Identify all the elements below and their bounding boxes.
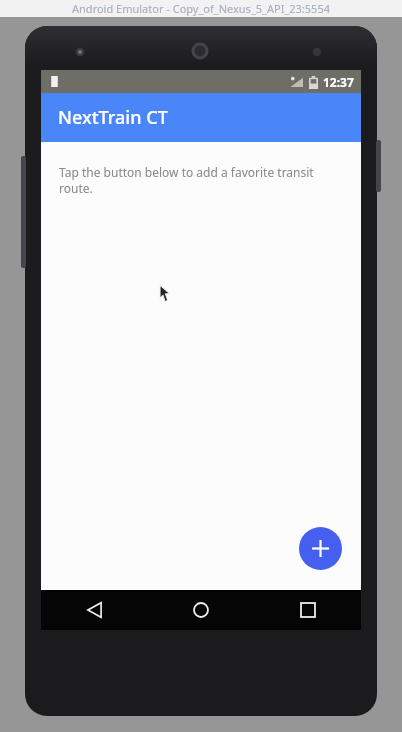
button[interactable]: Back bbox=[41, 590, 147, 630]
button[interactable]: Add favorite route bbox=[299, 527, 342, 570]
staticText: Tap the button below to add a favorite t… bbox=[59, 164, 347, 196]
button[interactable]: Recent apps bbox=[254, 590, 361, 630]
staticText: NextTrain CT bbox=[58, 105, 168, 130]
staticText: 12:37 bbox=[323, 74, 354, 90]
staticText: Android Emulator - Copy_of_Nexus_5_API_2… bbox=[72, 1, 330, 16]
button[interactable]: NextTrain CT bbox=[41, 93, 361, 142]
button[interactable]: Home bbox=[147, 590, 254, 630]
